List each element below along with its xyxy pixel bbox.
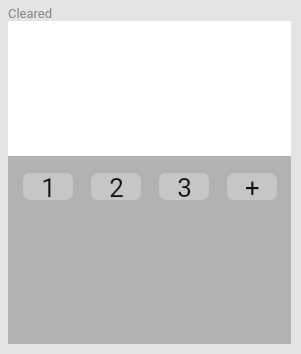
staticText: + (245, 173, 260, 200)
staticText: Cleared (8, 6, 53, 21)
button[interactable]: Digit one (23, 173, 73, 200)
staticText: 1 (41, 173, 56, 200)
button[interactable]: Digit three (159, 173, 209, 200)
staticText: 3 (177, 173, 192, 200)
staticText: 2 (109, 173, 124, 200)
button[interactable]: Plus (227, 173, 277, 200)
button[interactable]: Digit two (91, 173, 141, 200)
